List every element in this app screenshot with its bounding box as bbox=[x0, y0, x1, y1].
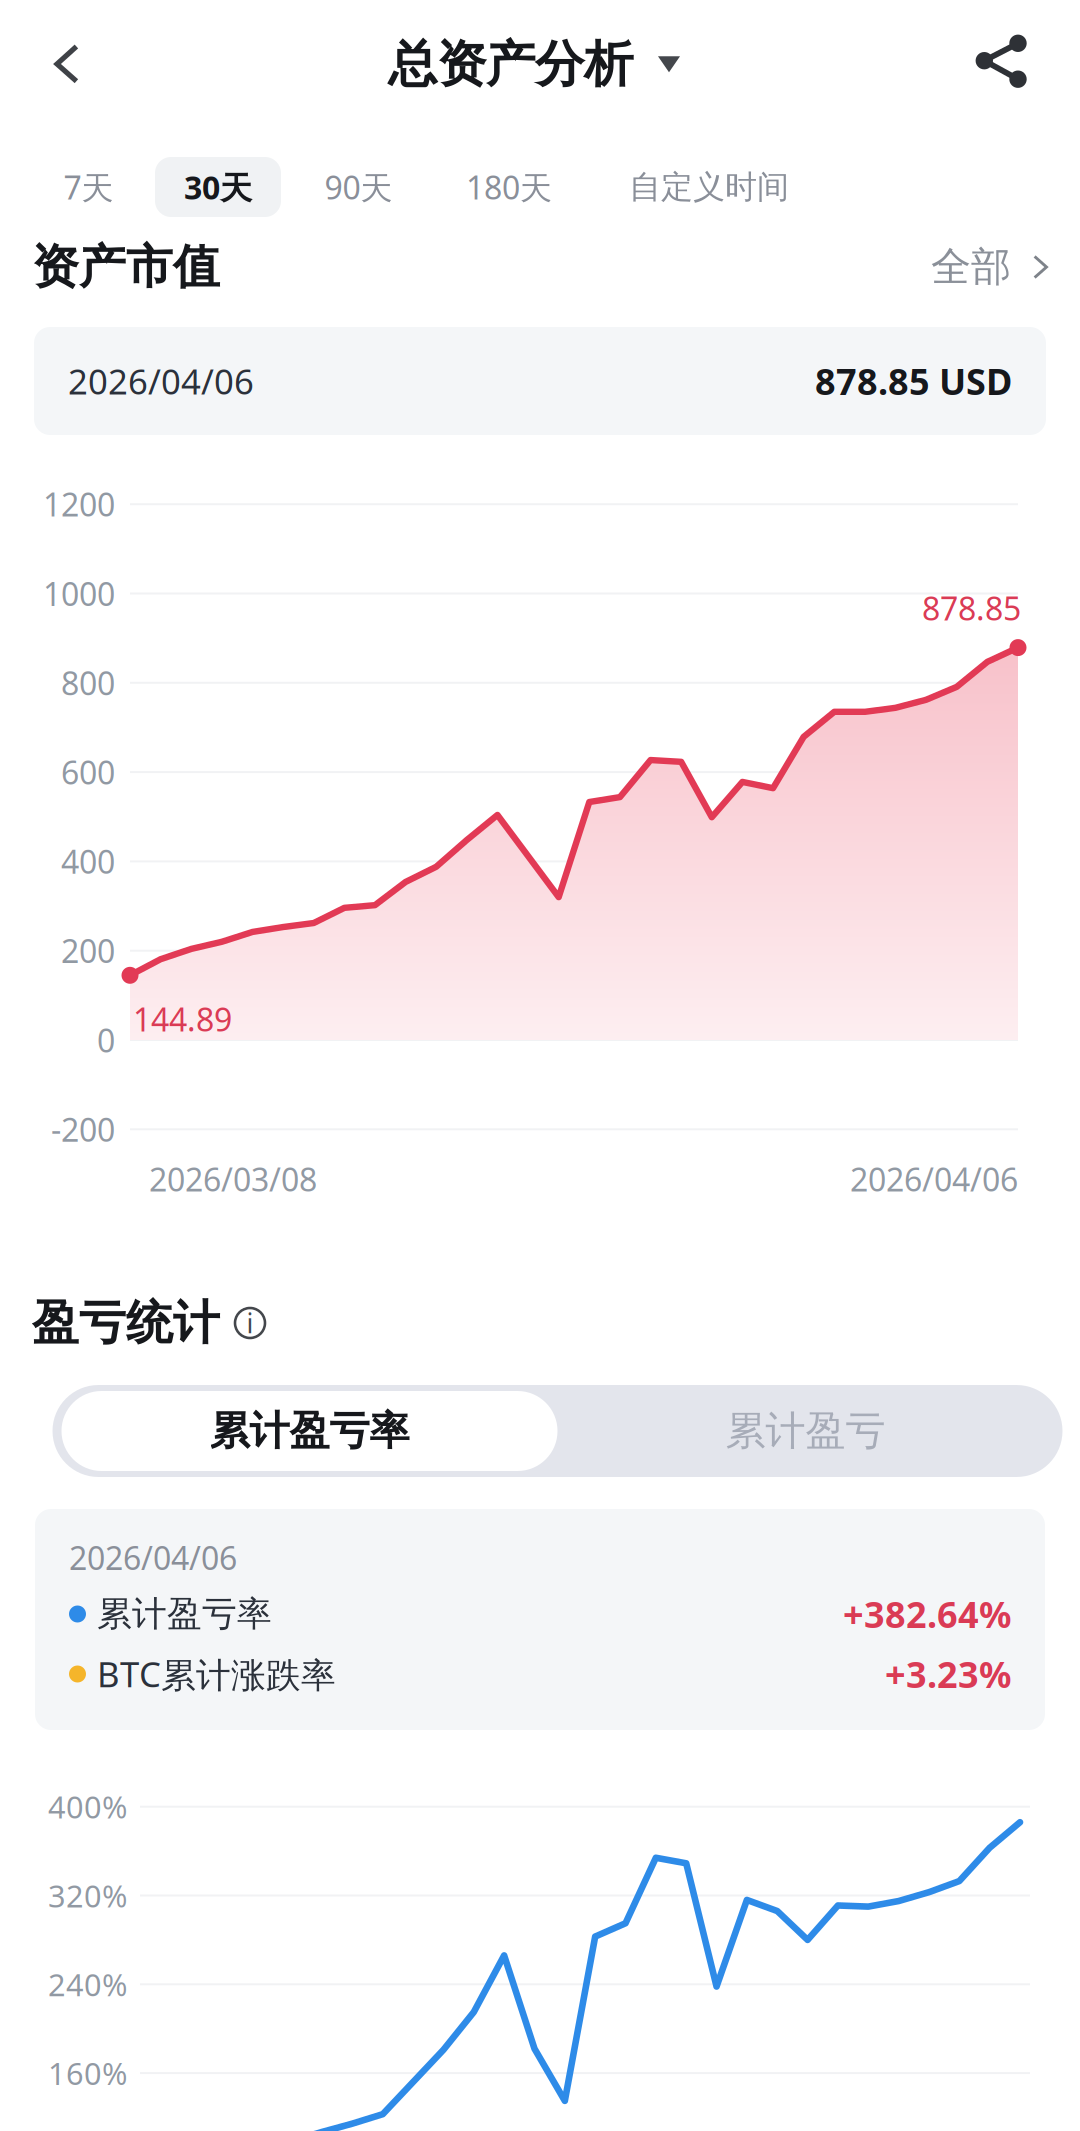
staticText: 800 bbox=[61, 662, 115, 704]
staticText: 878.85 USD bbox=[815, 357, 1012, 405]
button[interactable]: 自定义时间 bbox=[595, 157, 823, 217]
staticText: 240% bbox=[48, 1964, 127, 2005]
staticText: 878.85 bbox=[922, 587, 1021, 629]
staticText: 30天 bbox=[184, 166, 252, 208]
staticText: 累计盈亏 bbox=[725, 1406, 885, 1455]
button[interactable]: 7天 bbox=[34, 157, 143, 217]
button[interactable]: 30天 bbox=[155, 157, 281, 217]
staticText: 90天 bbox=[324, 166, 392, 208]
staticText: 1000 bbox=[43, 572, 115, 615]
button[interactable]: Share bbox=[950, 11, 1052, 111]
staticText: 400 bbox=[61, 840, 115, 883]
staticText: 144.89 bbox=[133, 998, 232, 1040]
staticText: 1200 bbox=[43, 483, 115, 525]
staticText: i bbox=[246, 1305, 253, 1341]
staticText: 2026/04/06 bbox=[69, 1536, 237, 1579]
staticText: 180天 bbox=[466, 166, 552, 208]
staticText: 400% bbox=[48, 1786, 127, 1827]
staticText: 7天 bbox=[63, 166, 113, 208]
staticText: 160% bbox=[48, 2053, 127, 2093]
staticText: +3.23% bbox=[885, 1650, 1011, 1698]
staticText: 200 bbox=[61, 929, 115, 972]
staticText: 0 bbox=[97, 1019, 115, 1061]
staticText: 自定义时间 bbox=[629, 167, 789, 207]
staticText: 累计盈亏率 bbox=[97, 1593, 272, 1635]
staticText: 2026/04/06 bbox=[68, 358, 254, 404]
button[interactable]: 全部 bbox=[931, 232, 1048, 301]
button[interactable]: 180天 bbox=[434, 157, 584, 217]
button[interactable]: 累计盈亏率 bbox=[61, 1391, 557, 1471]
staticText: 盈亏统计 bbox=[32, 1294, 220, 1352]
button[interactable]: Back bbox=[25, 18, 109, 110]
staticText: +382.64% bbox=[843, 1590, 1011, 1638]
button[interactable]: 总资产分析 bbox=[370, 18, 698, 111]
button[interactable]: 90天 bbox=[292, 157, 425, 217]
staticText: 资产市值 bbox=[32, 238, 220, 296]
button[interactable]: 累计盈亏 bbox=[557, 1391, 1053, 1471]
staticText: 全部 bbox=[931, 242, 1011, 291]
staticText: 2026/03/08 bbox=[149, 1158, 317, 1200]
staticText: 600 bbox=[61, 751, 115, 793]
staticText: 累计盈亏率 bbox=[209, 1406, 409, 1455]
staticText: -200 bbox=[51, 1108, 115, 1151]
staticText: 320% bbox=[48, 1875, 127, 1916]
staticText: 2026/04/06 bbox=[850, 1158, 1018, 1200]
staticText: BTC累计涨跌率 bbox=[97, 1651, 336, 1697]
staticText: 总资产分析 bbox=[388, 34, 633, 95]
